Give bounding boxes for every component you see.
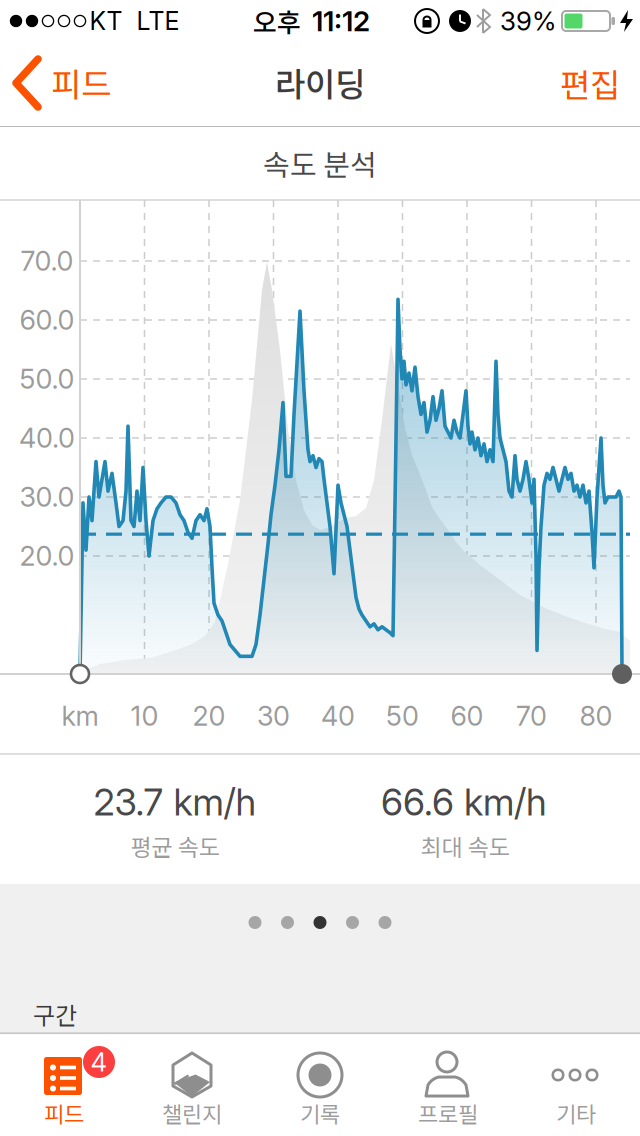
staticText: KT [89, 6, 122, 36]
staticText: 70.0 [20, 245, 73, 277]
staticText: 프로필 [418, 1097, 478, 1129]
staticText: 평균 속도 [130, 829, 219, 863]
staticText: 챌린지 [162, 1097, 222, 1129]
staticText: 10 [130, 700, 158, 732]
staticText: 40 [321, 700, 355, 732]
button[interactable]: 피드로 돌아가기 [0, 40, 130, 126]
staticText: 20.0 [19, 540, 74, 572]
staticText: 오후 [253, 2, 301, 40]
staticText: km [61, 700, 98, 732]
staticText: 40.0 [19, 422, 75, 454]
button[interactable]: 기록 [256, 1034, 384, 1136]
staticText: 30.0 [19, 481, 74, 513]
staticText: 라이딩 [275, 58, 365, 106]
button[interactable]: 4 [0, 1034, 128, 1136]
staticText: 피드 [51, 58, 111, 106]
button[interactable]: 프로필 [384, 1034, 512, 1136]
staticText: 속도 분석 [263, 142, 377, 184]
staticText: LTE [136, 6, 179, 36]
button[interactable]: 챌린지 [128, 1034, 256, 1136]
staticText: 20 [192, 700, 225, 732]
staticText: 80 [579, 700, 612, 732]
staticText: 최대 속도 [420, 829, 509, 863]
staticText: 50.0 [19, 363, 74, 395]
staticText: 50 [386, 700, 419, 732]
staticText: 60 [450, 700, 483, 732]
staticText: 66.6 km/h [381, 780, 547, 824]
staticText: 4 [90, 1046, 107, 1078]
staticText: 구간 [33, 997, 77, 1031]
staticText: 기록 [300, 1097, 340, 1129]
staticText: 60.0 [19, 304, 74, 336]
staticText: 기타 [556, 1097, 596, 1129]
staticText: 피드 [44, 1097, 84, 1129]
staticText: 39% [500, 5, 556, 37]
staticText: 70 [516, 700, 547, 732]
staticText: 30 [257, 700, 290, 732]
button[interactable]: 기타 [512, 1034, 640, 1136]
staticText: 편집 [560, 59, 620, 107]
staticText: 23.7 km/h [93, 780, 256, 824]
button[interactable]: 편집 [540, 40, 640, 126]
staticText: 11:12 [312, 4, 370, 38]
